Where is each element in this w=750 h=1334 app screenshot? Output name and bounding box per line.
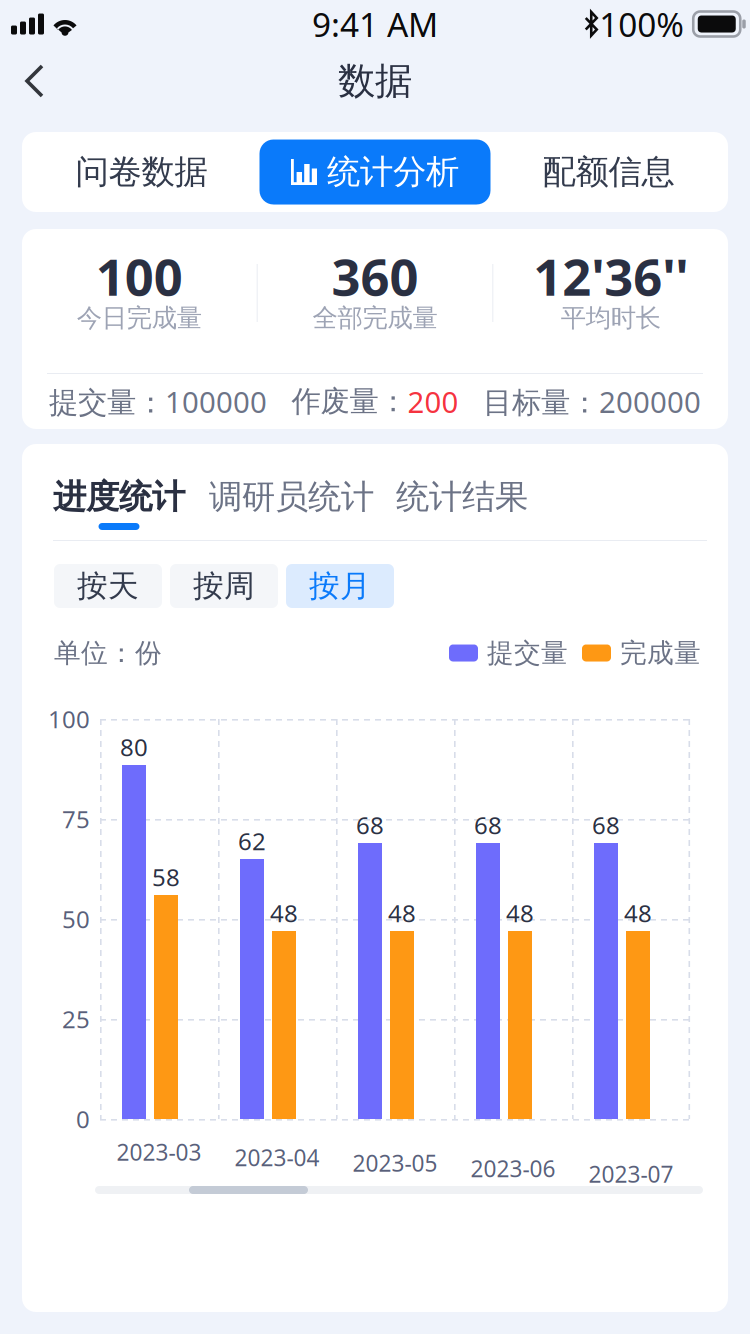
staticText: 今日完成量 <box>77 302 202 333</box>
staticText: 配额信息 <box>542 151 674 192</box>
staticText: 2023-06 <box>470 1153 555 1184</box>
button[interactable]: 按周 <box>170 564 278 608</box>
staticText: 360 <box>331 242 418 310</box>
staticText: 75 <box>62 803 90 835</box>
button[interactable]: 调研员统计 <box>209 471 374 530</box>
staticText: 完成量 <box>620 637 701 669</box>
staticText: 48 <box>506 897 534 929</box>
staticText: 单位：份 <box>54 637 162 669</box>
staticText: 按周 <box>193 567 255 605</box>
staticText: 48 <box>624 897 652 929</box>
staticText: 提交量：100000 <box>49 382 267 421</box>
staticText: 全部完成量 <box>312 302 437 333</box>
button[interactable]: 返回 <box>0 49 63 113</box>
staticText: 100% <box>599 2 684 46</box>
staticText: 58 <box>152 861 180 893</box>
staticText: 统计分析 <box>327 151 459 192</box>
button[interactable]: 进度统计 <box>53 471 185 530</box>
staticText: 48 <box>388 897 416 929</box>
staticText: 25 <box>62 1003 90 1035</box>
staticText: 按天 <box>77 567 139 605</box>
button[interactable]: 按天 <box>54 564 162 608</box>
button[interactable]: 问卷数据 <box>23 132 259 212</box>
staticText: 100 <box>96 242 183 310</box>
button[interactable]: 统计分析 <box>259 139 490 204</box>
button[interactable]: 配额信息 <box>490 132 726 212</box>
staticText: 数据 <box>338 58 412 104</box>
staticText: 按月 <box>309 567 371 605</box>
staticText: 68 <box>356 809 384 841</box>
staticText: 2023-05 <box>352 1148 437 1178</box>
staticText: 进度统计 <box>53 476 185 517</box>
button[interactable]: 按月 <box>286 564 394 608</box>
staticText: 作废量： <box>291 383 407 419</box>
staticText: 2023-07 <box>588 1159 673 1189</box>
staticText: 68 <box>592 809 620 841</box>
staticText: 目标量：200000 <box>483 382 701 421</box>
staticText: 2023-03 <box>116 1137 201 1167</box>
staticText: 2023-04 <box>234 1142 319 1173</box>
staticText: 68 <box>474 809 502 841</box>
staticText: 62 <box>238 825 266 857</box>
button[interactable]: 统计结果 <box>396 471 528 530</box>
staticText: 平均时长 <box>561 302 661 333</box>
staticText: 48 <box>270 897 298 929</box>
staticText: 0 <box>76 1103 90 1135</box>
staticText: 提交量 <box>487 637 568 669</box>
staticText: 统计结果 <box>396 476 528 517</box>
staticText: 80 <box>120 731 148 763</box>
staticText: 50 <box>62 903 90 935</box>
staticText: 200 <box>407 382 458 421</box>
staticText: 问卷数据 <box>75 151 207 192</box>
staticText: 9:41 AM <box>312 2 438 46</box>
staticText: 调研员统计 <box>209 476 374 517</box>
staticText: 12'36'' <box>533 242 688 310</box>
staticText: 100 <box>48 703 90 735</box>
